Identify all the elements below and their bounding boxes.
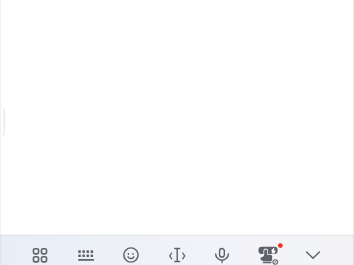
button[interactable]: Apps: [17, 239, 63, 265]
button[interactable]: Stickers: [245, 239, 291, 265]
button[interactable]: Voice input: [199, 239, 245, 265]
button[interactable]: Keyboard: [63, 239, 109, 265]
button[interactable]: Emoji: [108, 239, 154, 265]
button[interactable]: Hide keyboard: [290, 239, 336, 265]
button[interactable]: Text editing: [154, 239, 200, 265]
